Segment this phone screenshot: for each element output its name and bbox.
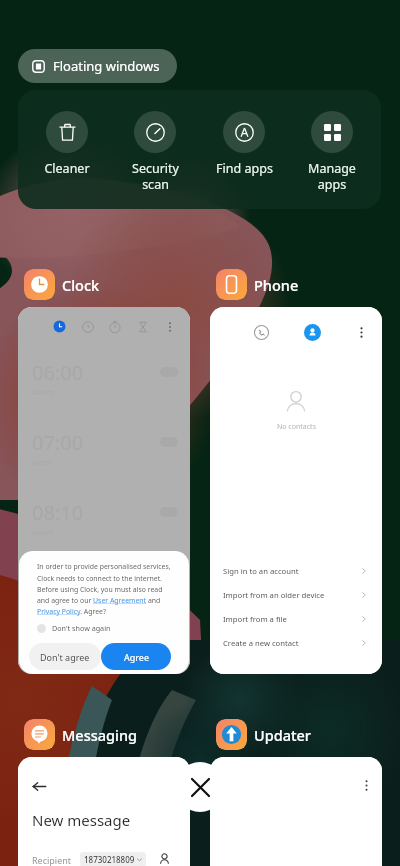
button[interactable]: Agree	[101, 643, 171, 670]
button[interactable]: Updater	[216, 719, 311, 750]
button[interactable]	[210, 757, 382, 866]
button[interactable]: Import from a file	[210, 607, 382, 631]
button[interactable]: Cleaner	[28, 111, 106, 177]
staticText: In order to provide personalised service…	[37, 562, 176, 616]
staticText: Floating windows	[53, 57, 160, 75]
staticText: Messaging	[62, 725, 138, 745]
button[interactable]: Don't show again	[37, 623, 111, 633]
button[interactable]: Sign in to an account	[210, 559, 382, 583]
staticText: Agree	[124, 651, 149, 663]
button[interactable]: Close all	[175, 762, 225, 812]
staticText: Don't show again	[52, 623, 111, 633]
button[interactable]: 06:00	[18, 307, 190, 674]
staticText: New message	[32, 810, 131, 830]
staticText: Import from an older device	[223, 590, 325, 600]
button[interactable]: Manage apps	[293, 111, 371, 192]
button[interactable]: Clock	[24, 269, 100, 300]
staticText: Security scan	[132, 160, 179, 192]
staticText: Don't agree	[40, 651, 90, 663]
staticText: Find apps	[216, 160, 273, 177]
button[interactable]: Security scan	[116, 111, 194, 192]
staticText: Clock	[62, 275, 100, 295]
staticText: Recipient	[32, 854, 72, 866]
button[interactable]: No contacts	[210, 307, 382, 674]
button[interactable]: Find apps	[205, 111, 283, 177]
button[interactable]: New message	[18, 757, 190, 866]
button[interactable]: Import from an older device	[210, 583, 382, 607]
staticText: Import from a file	[223, 614, 287, 624]
staticText: No contacts	[277, 422, 316, 432]
button[interactable]: Phone	[216, 269, 299, 300]
staticText: Create a new contact	[223, 638, 299, 648]
staticText: Sign in to an account	[223, 566, 299, 576]
button[interactable]: Create a new contact	[210, 631, 382, 655]
staticText: Phone	[254, 275, 299, 295]
staticText: 18730218809	[84, 854, 135, 865]
button[interactable]: Messaging	[24, 719, 138, 750]
staticText: Updater	[254, 725, 311, 745]
button[interactable]: Don't agree	[29, 643, 101, 670]
button[interactable]: Floating windows	[18, 49, 177, 83]
staticText: Manage apps	[308, 160, 356, 192]
staticText: Cleaner	[44, 160, 90, 177]
